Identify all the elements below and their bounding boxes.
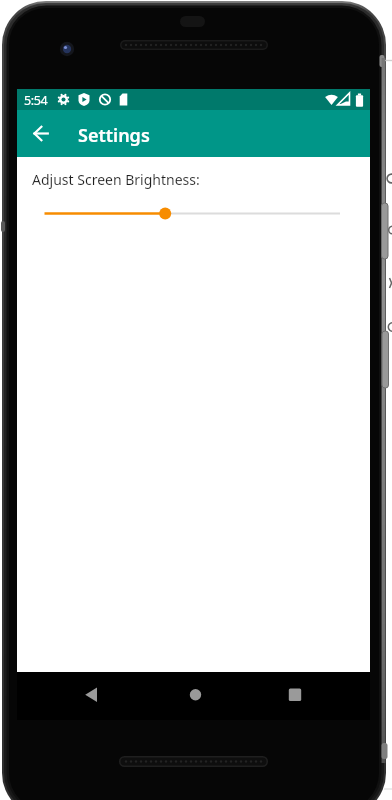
button[interactable] [75,679,107,711]
staticText: Adjust Screen Brightness: [32,170,200,189]
staticText: 5:54 [24,92,48,109]
button[interactable] [179,679,212,711]
staticText: Settings [78,123,150,148]
button[interactable] [37,201,349,225]
button[interactable] [279,679,311,711]
button[interactable] [25,120,57,148]
